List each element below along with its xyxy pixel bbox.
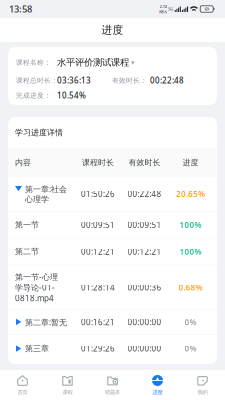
staticText: 20.65% (176, 189, 205, 199)
staticText: 学习进度详情 (15, 128, 63, 137)
button[interactable]: 我的 (180, 370, 225, 400)
staticText: 00:12:21 (127, 246, 161, 257)
staticText: 00:22:48 (150, 75, 184, 86)
staticText: 10.54% (57, 90, 86, 101)
staticText: 进度 (182, 158, 198, 167)
button[interactable]: 首页 (0, 370, 45, 400)
staticText: 首页 (17, 389, 27, 396)
staticText: 00:22:48 (127, 189, 161, 199)
staticText: 完成进度： (16, 91, 51, 100)
staticText: 课程总时长： (16, 76, 58, 85)
staticText: 第一节 (15, 220, 39, 230)
staticText: 2.74 (160, 4, 167, 9)
staticText: 5G (168, 6, 173, 12)
staticText: 00:16:21 (81, 317, 115, 327)
staticText: 第二章:暂无 (25, 317, 67, 327)
staticText: ▾ (129, 59, 134, 66)
staticText: 我的 (197, 389, 207, 396)
staticText: 第一章:社会 心理学 (25, 184, 67, 204)
staticText: 100% (179, 219, 201, 230)
staticText: KB/s (159, 9, 167, 14)
button[interactable]: 进度 (135, 370, 180, 400)
staticText: 0.68% (178, 282, 202, 293)
staticText: 进度 (152, 389, 162, 396)
staticText: 第三章 (25, 344, 49, 353)
staticText: 第二节 (15, 247, 39, 256)
button[interactable]: 错题本 (90, 370, 135, 400)
staticText: 有效时长： (112, 76, 147, 85)
staticText: 00:00:36 (127, 282, 161, 293)
staticText: 00:00:00 (127, 343, 161, 354)
staticText: 0% (184, 343, 196, 354)
staticText: 第一节-心理 学导论-01- 0818.mp4 (15, 271, 58, 303)
staticText: 01:29:26 (81, 343, 115, 354)
staticText: 01:28:14 (81, 282, 115, 293)
staticText: 进度 (101, 23, 123, 36)
staticText: 00:09:51 (127, 219, 161, 230)
button[interactable]: 课程 (45, 370, 90, 400)
staticText: 错题本 (105, 389, 120, 396)
staticText: 水平评价测试课程 (57, 57, 129, 68)
staticText: 69 (205, 6, 209, 12)
staticText: 课程时长 (82, 158, 114, 167)
staticText: 课程名称： (16, 58, 51, 67)
staticText: 00:12:21 (81, 246, 115, 257)
staticText: 课程 (62, 389, 72, 396)
staticText: 0% (184, 317, 196, 327)
staticText: 有效时长 (128, 158, 160, 167)
staticText: 03:36:13 (57, 75, 91, 86)
staticText: 00:09:51 (81, 219, 115, 230)
staticText: 00:00:00 (127, 317, 161, 327)
staticText: 01:50:26 (81, 189, 115, 199)
staticText: 内容 (15, 158, 31, 167)
staticText: 13:58 (9, 3, 32, 15)
staticText: 100% (179, 246, 201, 257)
